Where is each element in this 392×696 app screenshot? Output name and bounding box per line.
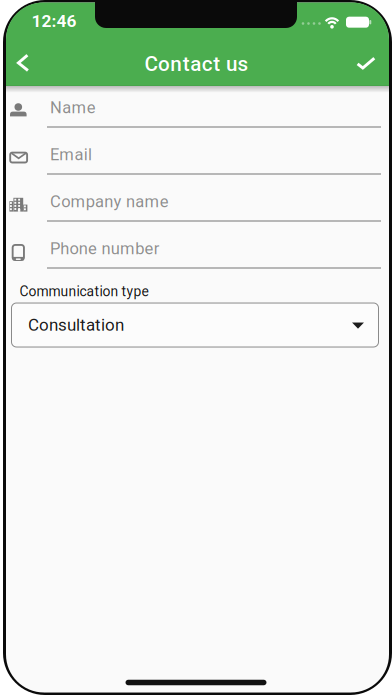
- staticText: Consultation: [28, 315, 124, 335]
- button[interactable]: Submit: [344, 42, 388, 86]
- staticText: Contact us: [144, 52, 249, 76]
- button[interactable]: Phone number: [7, 225, 383, 272]
- button[interactable]: Name: [7, 84, 383, 131]
- staticText: 12:46: [31, 11, 76, 31]
- staticText: Company name: [50, 192, 169, 211]
- button[interactable]: Email: [7, 131, 383, 178]
- button[interactable]: Company name: [7, 178, 383, 225]
- staticText: Name: [50, 98, 96, 117]
- staticText: Phone number: [50, 239, 160, 258]
- button[interactable]: Back: [3, 42, 47, 86]
- button[interactable]: Consultation: [11, 302, 379, 347]
- staticText: Communication type: [19, 283, 148, 300]
- staticText: Email: [50, 145, 92, 164]
